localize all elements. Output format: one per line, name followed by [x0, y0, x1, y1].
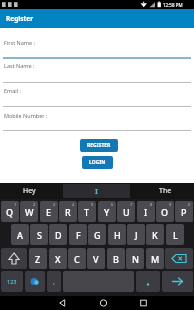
staticText: P [181, 206, 187, 218]
staticText: V [93, 253, 99, 265]
button[interactable]: V [87, 248, 105, 269]
button[interactable]: Register [0, 9, 194, 28]
button[interactable]: Y [98, 201, 116, 222]
button[interactable]: N [126, 248, 144, 269]
button[interactable]: T [78, 201, 96, 222]
button[interactable]: Q [1, 201, 19, 222]
button[interactable]: G [88, 224, 106, 245]
button[interactable]: P [175, 201, 193, 222]
staticText: A [17, 229, 23, 241]
staticText: Y [104, 206, 110, 218]
staticText: 12:58 PM [163, 2, 183, 8]
staticText: X [55, 253, 61, 265]
staticText: 9 [169, 202, 172, 207]
button[interactable]: Hey [14, 185, 44, 197]
staticText: C [74, 253, 80, 265]
button[interactable]: The [150, 185, 180, 197]
button[interactable] [55, 296, 70, 310]
button[interactable]: C [68, 248, 86, 269]
button[interactable]: M [146, 248, 164, 269]
staticText: The [159, 186, 172, 196]
button[interactable] [162, 271, 193, 292]
staticText: 5 [91, 202, 94, 207]
button[interactable] [136, 271, 160, 292]
button[interactable]: A [11, 224, 29, 245]
button[interactable] [3, 70, 191, 83]
button[interactable]: S [30, 224, 48, 245]
staticText: Last Name : [4, 62, 35, 69]
staticText: 2 [33, 202, 36, 207]
button[interactable]: , [47, 271, 61, 292]
button[interactable]: U [117, 201, 135, 222]
staticText: Mobile Number : [4, 112, 48, 119]
button[interactable] [25, 271, 45, 292]
staticText: S [37, 229, 42, 241]
staticText: E [46, 206, 52, 218]
button[interactable]: O [156, 201, 174, 222]
staticText: M [151, 253, 160, 265]
staticText: K [152, 229, 158, 241]
button[interactable]: X [49, 248, 67, 269]
button[interactable]: D [49, 224, 67, 245]
button[interactable]: K [146, 224, 164, 245]
button[interactable] [3, 46, 191, 58]
staticText: 7 [130, 202, 133, 207]
button[interactable] [165, 248, 193, 269]
button[interactable]: B [107, 248, 125, 269]
staticText: , [53, 277, 55, 287]
button[interactable]: I [63, 184, 130, 198]
staticText: LOGIN [89, 159, 106, 166]
staticText: 4 [72, 202, 75, 207]
staticText: Q [6, 206, 14, 218]
button[interactable] [3, 119, 191, 131]
staticText: Email : [4, 87, 22, 94]
staticText: T [84, 206, 90, 218]
button[interactable] [136, 296, 151, 310]
button[interactable]: E [40, 201, 58, 222]
staticText: I [95, 186, 98, 196]
staticText: First Name : [4, 39, 36, 46]
staticText: R [65, 206, 71, 218]
staticText: 0 [188, 202, 191, 207]
staticText: D [55, 229, 62, 241]
staticText: U [123, 206, 130, 218]
staticText: F [76, 229, 81, 241]
button[interactable]: REGISTER [80, 139, 118, 152]
staticText: O [161, 206, 169, 218]
button[interactable]: I [137, 201, 155, 222]
staticText: I [144, 206, 148, 218]
staticText: Hey [23, 186, 36, 196]
button[interactable]: L [166, 224, 184, 245]
button[interactable]: J [127, 224, 145, 245]
button[interactable]: R [59, 201, 77, 222]
staticText: 3 [53, 202, 56, 207]
staticText: Register [6, 14, 34, 23]
staticText: 123 [7, 278, 17, 285]
button[interactable] [96, 296, 111, 310]
staticText: B [113, 253, 119, 265]
staticText: Z [35, 253, 41, 265]
button[interactable] [1, 248, 27, 269]
button[interactable]: LOGIN [82, 156, 113, 169]
staticText: REGISTER [87, 142, 111, 149]
staticText: N [132, 253, 139, 265]
button[interactable]: Z [29, 248, 47, 269]
button[interactable]: W [20, 201, 38, 222]
button[interactable]: 123 [1, 271, 23, 292]
staticText: 6 [111, 202, 114, 207]
staticText: L [173, 229, 178, 241]
button[interactable]: F [69, 224, 87, 245]
staticText: G [94, 229, 101, 241]
staticText: J [135, 229, 138, 241]
staticText: 1 [14, 202, 17, 207]
button[interactable] [3, 95, 191, 107]
button[interactable]: H [108, 224, 126, 245]
staticText: H [114, 229, 121, 241]
staticText: W [25, 206, 34, 218]
staticText: 8 [150, 202, 153, 207]
